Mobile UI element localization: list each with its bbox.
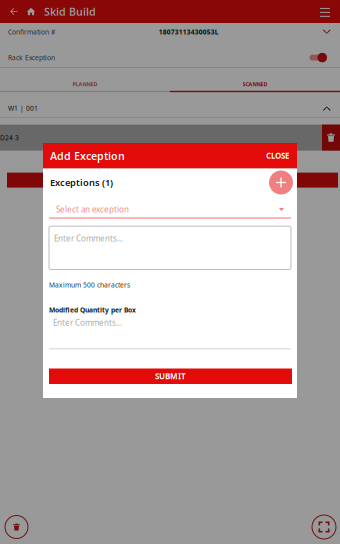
button[interactable]: Delete D24 3	[322, 125, 340, 151]
staticText: SCANNED	[242, 81, 267, 88]
staticText: PLANNED	[72, 81, 97, 88]
button[interactable]: PLANNED	[0, 78, 170, 91]
button[interactable]: Add exception	[269, 170, 293, 194]
staticText: Add Exception	[50, 149, 125, 163]
staticText: Rack Exception	[8, 53, 55, 62]
staticText: Maximum 500 characters	[49, 281, 130, 289]
button[interactable]: CLOSE	[260, 144, 290, 167]
button[interactable]	[7, 173, 338, 188]
button[interactable]: Delete	[5, 515, 28, 538]
staticText: SUBMIT	[155, 371, 186, 381]
button[interactable]: Home	[23, 0, 39, 23]
button[interactable]: Select an exception	[49, 201, 291, 219]
staticText: Enter Comments...	[53, 317, 122, 328]
staticText: Modified Quantity per Box	[49, 305, 136, 314]
button[interactable]: Scan	[312, 515, 336, 539]
button[interactable]: SCANNED	[170, 78, 340, 91]
button[interactable]: Back	[5, 0, 23, 23]
staticText: Exceptions (1)	[50, 176, 113, 189]
staticText: Skid Build	[44, 4, 96, 19]
staticText: W1 | 001	[8, 104, 38, 113]
button[interactable]: Menu	[315, 0, 335, 23]
staticText: Select an exception	[56, 204, 129, 215]
staticText: 18073113430053L	[159, 28, 219, 36]
button[interactable]: Rack Exception, on	[313, 52, 331, 64]
staticText: D24 3	[0, 133, 19, 142]
button[interactable]: SUBMIT	[49, 368, 292, 384]
staticText: Enter Comments...	[54, 233, 123, 244]
staticText: CLOSE	[266, 150, 289, 161]
staticText: Confirmation #	[8, 28, 55, 36]
